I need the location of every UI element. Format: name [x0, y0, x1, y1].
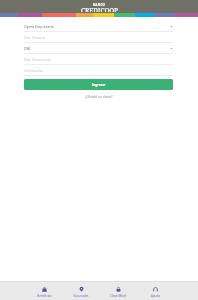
staticText: Clave Móvil	[110, 294, 126, 298]
staticText: CREDICOOP	[81, 6, 118, 12]
button[interactable]: Ingresar	[24, 79, 173, 90]
staticText: Nro. Documento	[24, 57, 52, 62]
staticText: Sucursales	[73, 294, 89, 298]
staticText: Ingresar	[92, 83, 106, 87]
button[interactable]: DNI	[24, 43, 173, 54]
staticText: Opera Empresaria	[24, 24, 54, 29]
button[interactable]: Sucursales	[63, 282, 99, 300]
staticText: Nro. Usuario	[24, 35, 45, 40]
button[interactable]: Opera Empresaria	[24, 21, 173, 32]
button[interactable]: Clave Móvil	[100, 282, 136, 300]
staticText: ¿Olvidó su clave?	[85, 94, 113, 99]
button[interactable]: ¿Olvidó su clave?	[24, 93, 173, 99]
staticText: Ayuda	[151, 294, 160, 298]
staticText: Beneficios	[37, 294, 52, 298]
button[interactable]: Beneficios	[26, 282, 62, 300]
button[interactable]: Nro. Documento	[24, 54, 173, 65]
other: Open dropdown	[170, 47, 173, 50]
staticText: Contraseña	[24, 68, 43, 73]
button[interactable]: Contraseña	[24, 65, 173, 76]
button[interactable]: Nro. Usuario	[24, 32, 173, 43]
button[interactable]: Ayuda	[137, 282, 173, 300]
staticText: BANCO	[93, 3, 106, 7]
staticText: DNI	[24, 46, 31, 51]
other: Open dropdown	[170, 25, 173, 28]
